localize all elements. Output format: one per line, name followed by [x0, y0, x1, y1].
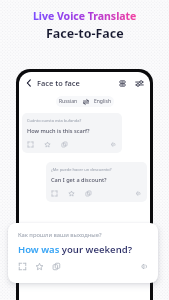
- staticText: English: [94, 98, 112, 105]
- button[interactable]: Russian: [56, 96, 114, 107]
- button[interactable]: Expand: [51, 190, 58, 197]
- button[interactable]: Expand: [18, 262, 27, 271]
- staticText: Face to face: [37, 78, 80, 88]
- staticText: How was your weekend?: [18, 243, 133, 256]
- staticText: Russian: [59, 98, 78, 105]
- button[interactable]: ¿Me puede hacer un descuento?: [46, 162, 147, 202]
- button[interactable]: Expand: [27, 141, 34, 148]
- button[interactable]: Play audio: [135, 190, 142, 197]
- button[interactable]: Copy: [61, 141, 68, 148]
- button[interactable]: Favorite: [44, 141, 51, 148]
- staticText: Cuánto cuesta esta bufanda?: [27, 118, 82, 123]
- button[interactable]: Play audio: [140, 262, 149, 271]
- staticText: Как прошли ваши выходные?: [18, 231, 102, 239]
- other: Swap languages: [83, 99, 89, 105]
- button[interactable]: Favorite: [35, 262, 44, 271]
- staticText: ¿Me puede hacer un descuento?: [51, 167, 112, 172]
- button[interactable]: Cuánto cuesta esta bufanda?: [22, 113, 122, 153]
- button[interactable]: Settings: [135, 79, 144, 88]
- button[interactable]: Как прошли ваши выходные?: [8, 223, 158, 283]
- staticText: Face-to-Face: [46, 25, 124, 42]
- staticText: Can I get a discount?: [51, 176, 107, 184]
- staticText: How much is this scarf?: [27, 127, 90, 135]
- button[interactable]: Subtitles: [118, 79, 127, 88]
- button[interactable]: Favorite: [68, 190, 75, 197]
- button[interactable]: Copy: [85, 190, 92, 197]
- button[interactable]: Copy: [52, 262, 61, 271]
- button[interactable]: Back: [24, 78, 34, 88]
- button[interactable]: Play audio: [110, 141, 117, 148]
- staticText: Live Voice Translate: [33, 9, 137, 23]
